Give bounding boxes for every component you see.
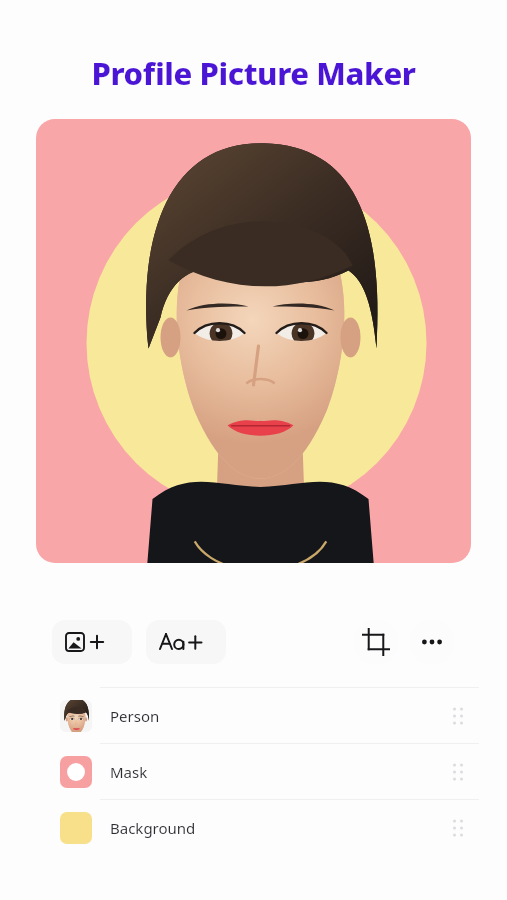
button[interactable]	[36, 119, 471, 563]
button[interactable]: More options	[409, 619, 455, 665]
button[interactable]: Crop	[353, 619, 399, 665]
button[interactable]: Add text	[146, 620, 226, 664]
staticText: Profile Picture Maker	[0, 52, 507, 94]
button[interactable]: Person	[0, 688, 507, 743]
button[interactable]: Add image	[52, 620, 132, 664]
staticText: Mask	[110, 762, 148, 782]
staticText: Background	[110, 818, 196, 838]
button[interactable]: Mask	[0, 744, 507, 799]
button[interactable]: Background	[0, 800, 507, 855]
staticText: Person	[110, 706, 160, 726]
